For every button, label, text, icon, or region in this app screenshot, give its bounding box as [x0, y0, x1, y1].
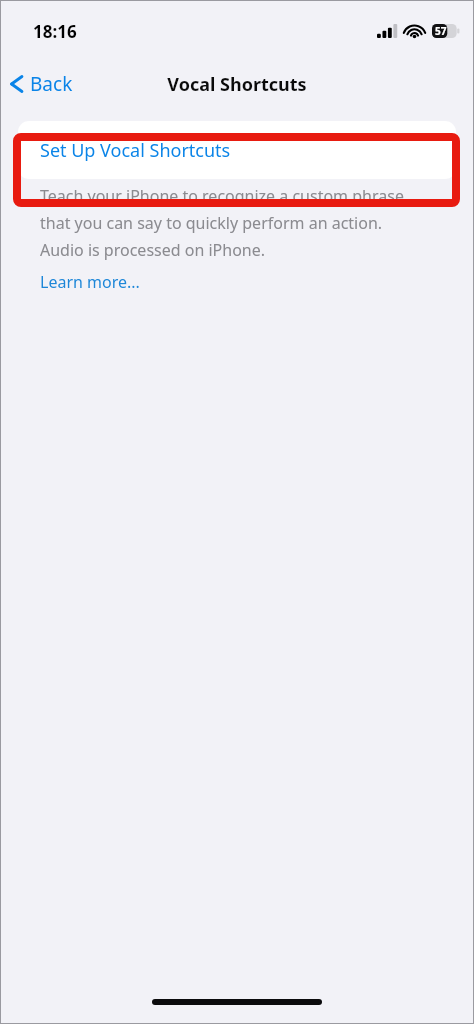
staticText: 57 [435, 24, 447, 38]
other: Back [10, 73, 23, 95]
button[interactable]: Back [0, 65, 85, 103]
staticText: Set Up Vocal Shortcuts [40, 138, 231, 163]
staticText: Audio is processed on iPhone. [40, 239, 266, 261]
staticText: Learn more... [40, 271, 140, 293]
staticText: Back [30, 71, 73, 97]
staticText: that you can say to quickly perform an a… [40, 212, 383, 234]
staticText: 18:16 [33, 20, 77, 43]
staticText: Teach your iPhone to recognize a custom … [40, 185, 404, 207]
staticText: Vocal Shortcuts [167, 72, 307, 97]
button[interactable]: Learn more... [40, 271, 140, 293]
button[interactable]: Set Up Vocal Shortcuts [18, 121, 456, 179]
